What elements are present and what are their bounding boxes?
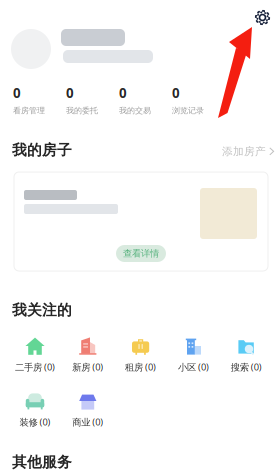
staticText: 我的委托 <box>66 106 98 115</box>
button[interactable]: 小区 (0) <box>167 337 220 373</box>
button[interactable]: 添加房产 <box>218 141 279 162</box>
staticText: 其他服务 <box>12 453 72 470</box>
staticText: 0 <box>119 84 127 102</box>
button[interactable]: 0 <box>66 84 119 112</box>
staticText: 二手房 (0) <box>15 361 55 373</box>
staticText: 0 <box>13 84 21 102</box>
button[interactable]: 二手房 (0) <box>9 337 61 373</box>
button[interactable]: 查看详情 <box>14 172 268 271</box>
staticText: 看房管理 <box>13 106 45 115</box>
staticText: 租房 (0) <box>125 361 156 373</box>
button[interactable]: 0 <box>13 84 66 112</box>
button[interactable]: 0 <box>119 84 172 112</box>
staticText: 0 <box>172 84 180 102</box>
button[interactable]: 商业 (0) <box>61 392 114 428</box>
staticText: 装修 (0) <box>19 416 50 428</box>
button[interactable]: 设置 <box>251 6 274 29</box>
staticText: 0 <box>66 84 74 102</box>
staticText: 我的房子 <box>12 141 72 159</box>
staticText: 我关注的 <box>12 301 72 319</box>
button[interactable]: 租房 (0) <box>114 337 167 373</box>
staticText: 搜索 (0) <box>231 361 262 373</box>
button[interactable]: 搜索 (0) <box>220 337 273 373</box>
staticText: 新房 (0) <box>72 361 103 373</box>
button[interactable]: 0 <box>172 84 225 112</box>
staticText: 浏览记录 <box>172 106 204 115</box>
staticText: 我的交易 <box>119 106 151 115</box>
staticText: 查看详情 <box>123 248 159 259</box>
staticText: 添加房产 <box>222 145 266 158</box>
button[interactable]: 装修 (0) <box>9 392 61 428</box>
staticText: 小区 (0) <box>178 361 209 373</box>
staticText: 商业 (0) <box>72 416 103 428</box>
button[interactable]: 新房 (0) <box>61 337 114 373</box>
